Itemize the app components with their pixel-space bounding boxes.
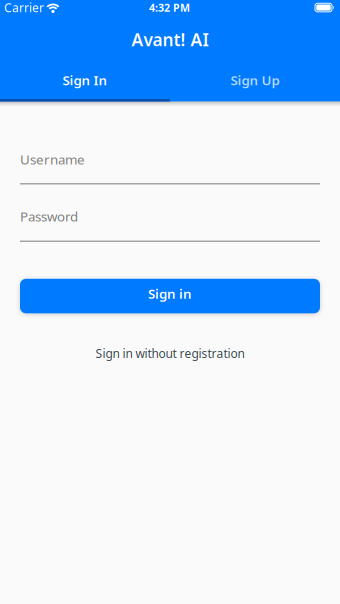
staticText: Sign in without registration (95, 345, 244, 361)
staticText: Password (20, 207, 78, 225)
staticText: Sign In (62, 71, 107, 89)
button[interactable]: Sign in without registration (20, 343, 320, 363)
staticText: Carrier (4, 0, 44, 15)
button[interactable]: Sign Up (170, 58, 340, 99)
staticText: 4:32 PM (149, 0, 190, 15)
button[interactable]: Sign in (20, 279, 320, 313)
staticText: Sign in (148, 285, 192, 302)
button[interactable]: Sign In (0, 58, 170, 99)
staticText: Avant! AI (131, 28, 208, 51)
staticText: Username (20, 150, 85, 168)
staticText: Sign Up (230, 71, 279, 89)
